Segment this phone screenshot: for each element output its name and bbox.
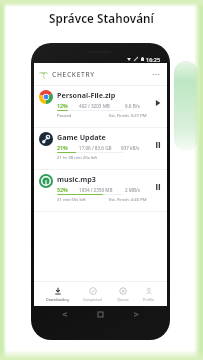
staticText: Personal-File.zip [57,90,116,100]
staticText: Paused [57,113,72,119]
staticText: 1934 / 2350 MB [79,187,113,193]
staticText: 16:25 [146,56,161,62]
staticText: 937 kB/s [121,145,140,151]
staticText: Est. Finish: 9:27 PM [109,113,147,119]
staticText: 21 hr 38 min 20s left [57,155,98,161]
button[interactable]: Profile [141,286,157,303]
staticText: 52% [57,186,68,193]
button[interactable]: Completed [81,286,104,303]
button[interactable]: Game Update [34,128,167,169]
staticText: Game Update [57,132,106,142]
button[interactable]: Resume download [152,97,163,108]
staticText: Profile [143,297,155,302]
staticText: Est. Finish: 4:45 PM [109,197,147,203]
staticText: 12% [57,102,68,109]
button[interactable]: music.mp3 [34,170,167,211]
staticText: 21% [57,144,68,151]
staticText: CHECKETRY [52,70,95,79]
staticText: 2 MB/s [125,187,140,193]
staticText: 6.6 B/s [125,103,140,109]
staticText: music.mp3 [57,174,96,184]
button[interactable]: Pause download [152,181,163,192]
staticText: 31 min 55s left [57,197,86,203]
staticText: Queue [117,297,129,302]
button[interactable]: Pause download [152,139,163,150]
staticText: Správce Stahování [0,11,203,27]
button[interactable]: Personal-File.zip [34,86,167,127]
button[interactable]: Queue [115,286,131,303]
staticText: 17.06 / 83.6 GB [79,145,112,151]
staticText: 402 / 3203 MB [79,103,110,109]
button[interactable]: Downloading [44,286,71,303]
button[interactable]: More options [151,69,161,79]
staticText: Downloading [46,297,69,302]
staticText: Completed [83,297,102,302]
